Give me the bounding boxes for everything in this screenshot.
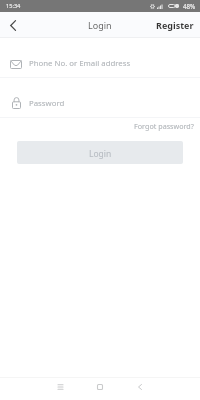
button[interactable]: Phone No. or Email address xyxy=(0,50,200,77)
staticText: 15:34 xyxy=(6,2,21,10)
staticText: Register xyxy=(156,19,194,31)
button[interactable]: Forgot password? xyxy=(124,118,200,136)
staticText: Login xyxy=(88,19,112,31)
button[interactable]: Login xyxy=(17,141,183,164)
staticText: Password xyxy=(29,98,65,109)
button[interactable]: Register xyxy=(150,14,200,36)
staticText: Forgot password? xyxy=(134,121,194,131)
staticText: Login xyxy=(89,148,112,160)
staticText: 48% xyxy=(183,2,196,10)
button[interactable]: Home xyxy=(80,378,120,400)
button[interactable]: Password xyxy=(0,78,200,117)
button[interactable]: Back xyxy=(0,13,25,38)
staticText: Phone No. or Email address xyxy=(29,58,131,69)
button[interactable]: Recent apps xyxy=(40,378,80,400)
button[interactable]: Back xyxy=(120,378,160,400)
